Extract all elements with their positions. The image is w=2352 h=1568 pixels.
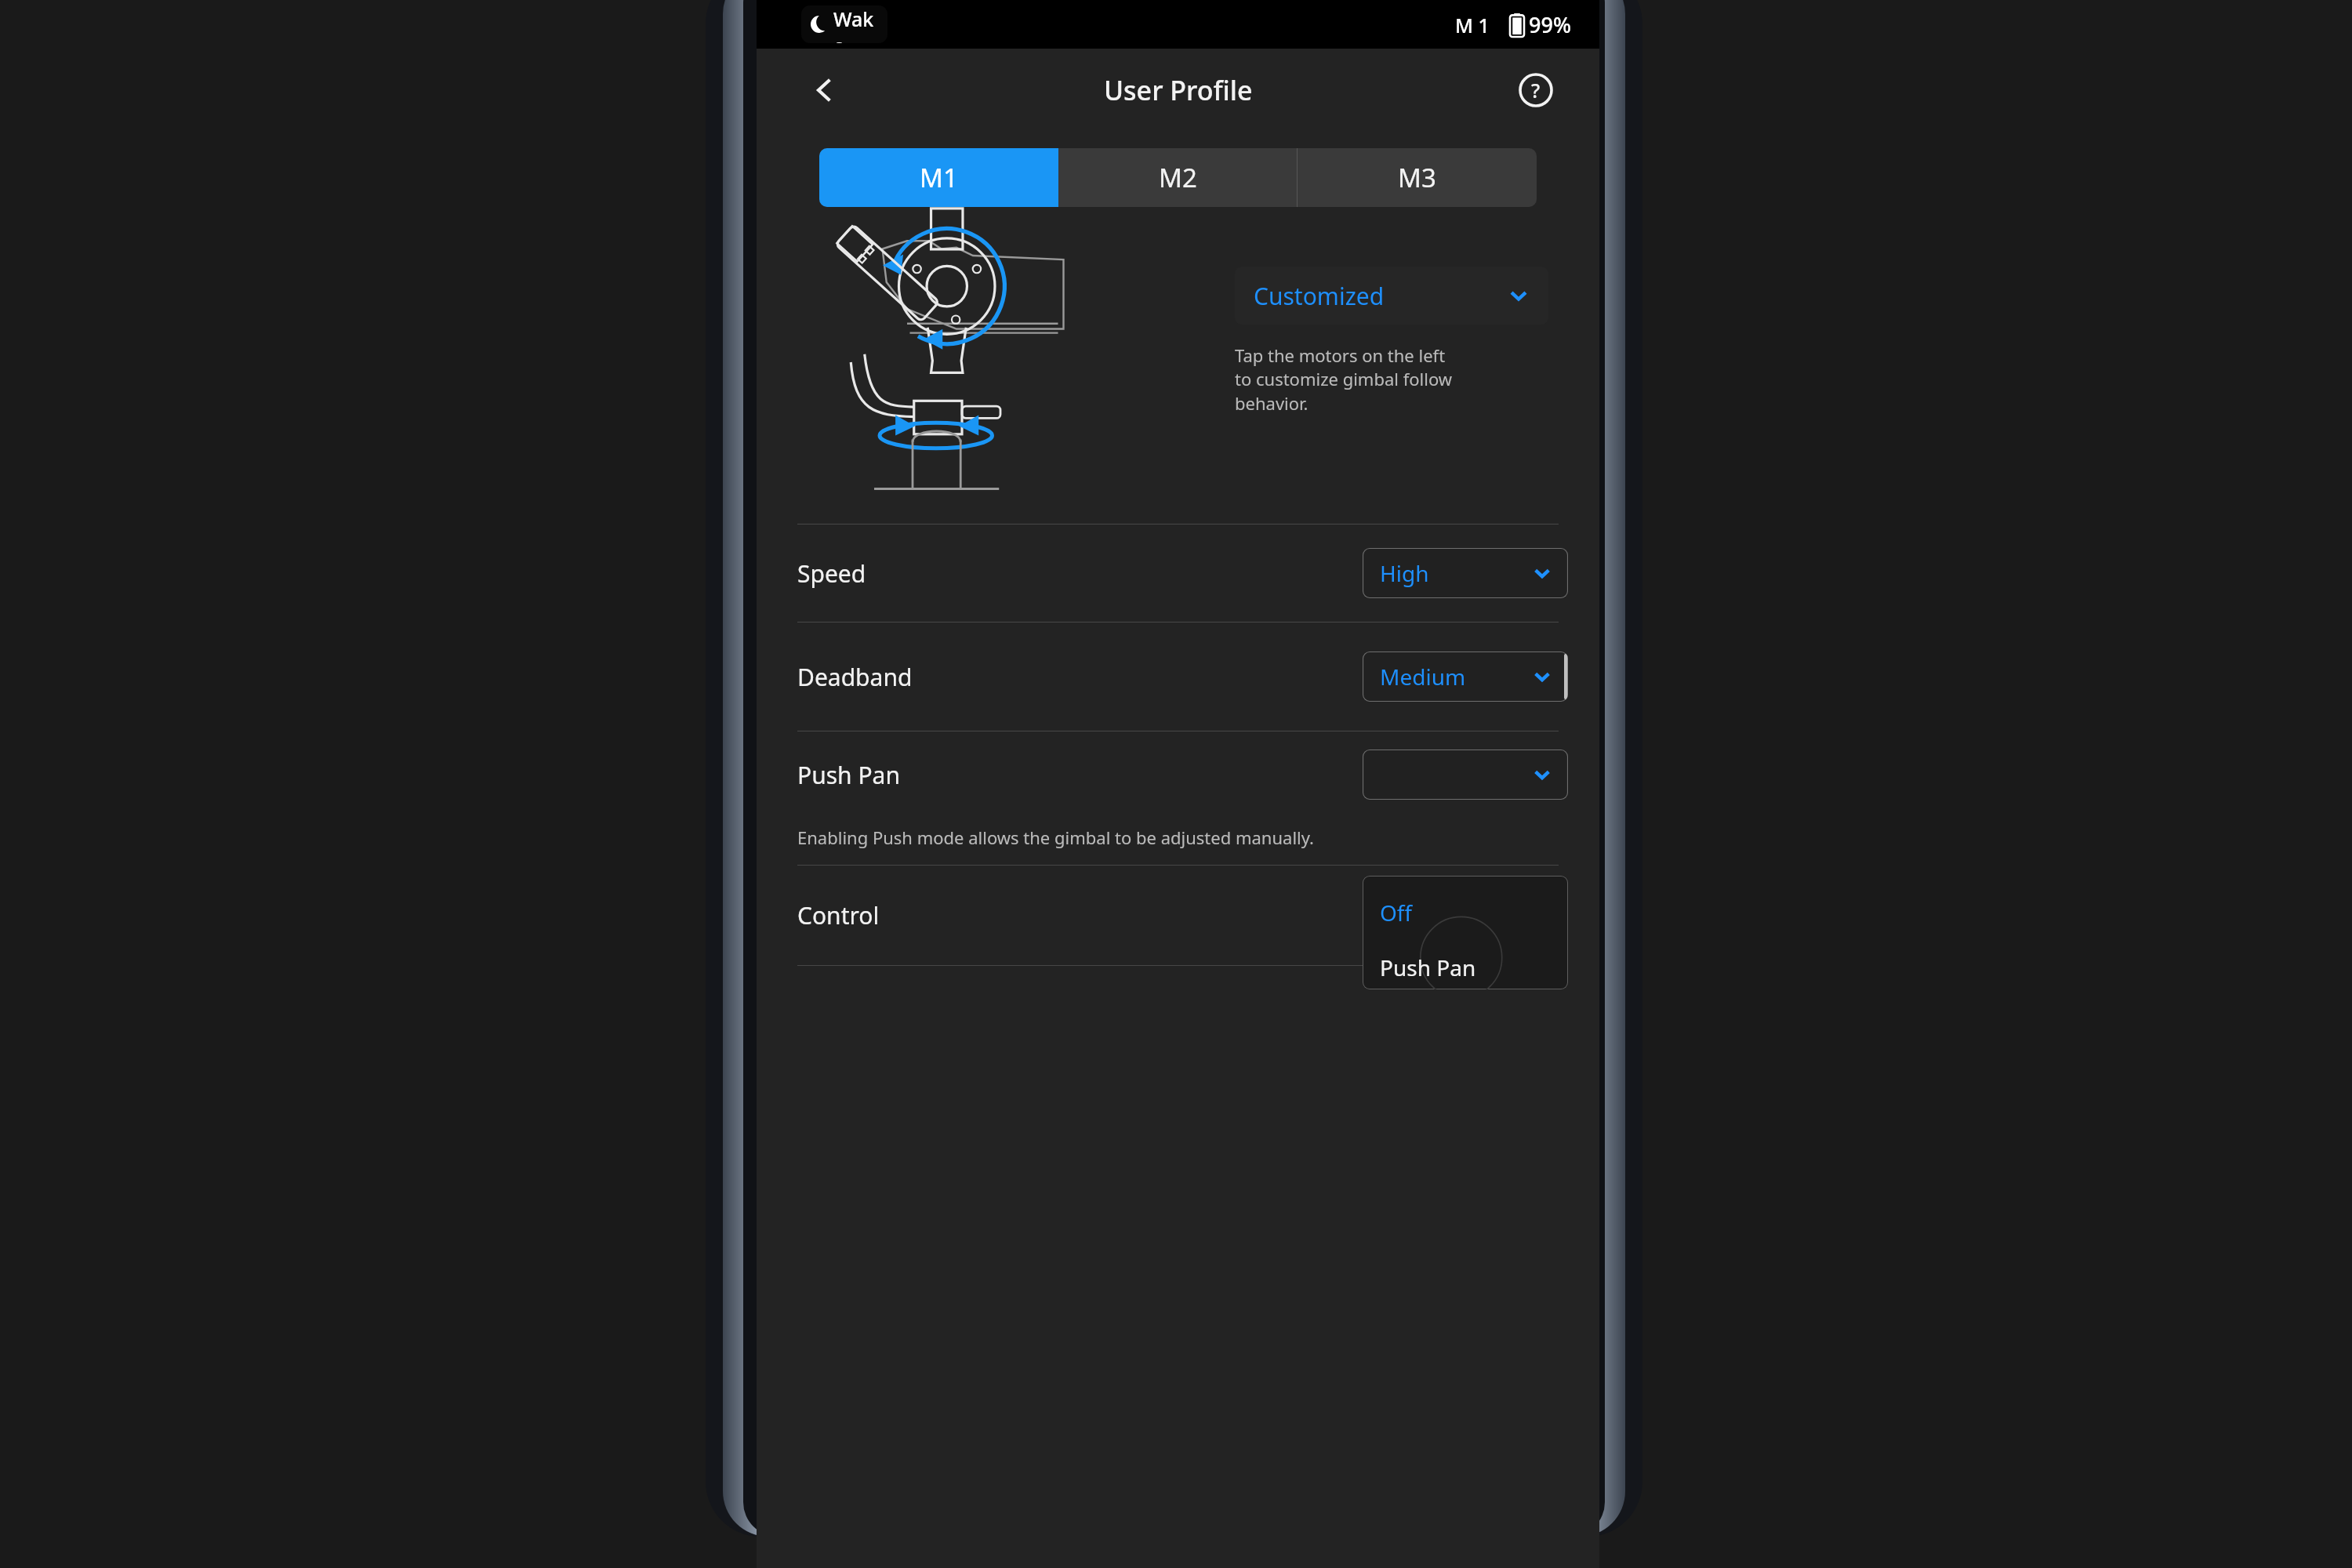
staticText: High [1380,558,1429,588]
button[interactable]: Control [757,866,1599,965]
button[interactable]: Help [1508,63,1563,118]
button[interactable]: M1 [819,148,1058,207]
staticText: ? [1531,77,1541,103]
button[interactable]: Deadband [757,622,1599,731]
staticText: M1 [920,160,958,195]
staticText: Speed [797,557,866,590]
button[interactable]: Back [797,63,852,118]
staticText: Medium [1380,662,1466,691]
staticText: M3 [1398,160,1436,195]
button[interactable]: M2 [1058,148,1298,207]
staticText: Wake [833,5,878,43]
button[interactable]: M3 [1298,148,1537,207]
staticText: Customized [1254,280,1385,312]
staticText: Deadband [797,661,913,693]
staticText: Off [1380,898,1413,927]
staticText: User Profile [1104,72,1253,108]
staticText: Push Pan [1380,953,1476,982]
button[interactable]: Push Pan [757,731,1599,818]
staticText: M2 [1159,160,1197,195]
button[interactable]: Customized [1235,267,1548,325]
staticText: Enabling Push mode allows the gimbal to … [797,826,1314,849]
button[interactable]: Wake [801,5,887,43]
staticText: 99% [1529,10,1571,39]
button[interactable]: Off [1363,876,1568,989]
button[interactable]: Speed [757,524,1599,622]
button[interactable]: Gimbal motors diagram [792,229,1066,495]
staticText: Tap the motors on the left to customize … [1235,343,1453,416]
staticText: M 1 [1455,12,1490,38]
staticText: Push Pan [797,759,900,791]
staticText: Control [797,899,880,931]
